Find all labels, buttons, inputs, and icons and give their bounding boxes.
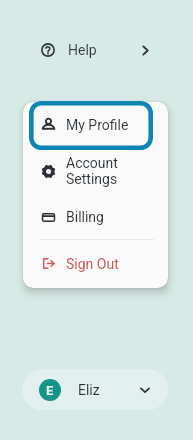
staticText: Sign Out [66, 256, 119, 272]
button[interactable]: Sign Out [23, 240, 168, 287]
button[interactable]: Billing [23, 195, 168, 239]
staticText: My Profile [66, 117, 129, 133]
staticText: Settings [66, 171, 118, 187]
button[interactable]: Account [23, 147, 168, 195]
staticText: Account [66, 155, 118, 171]
button[interactable]: E [22, 369, 168, 410]
button[interactable]: My Profile [23, 102, 168, 147]
button[interactable] [29, 101, 153, 150]
staticText: E [46, 383, 54, 398]
staticText: Billing [66, 209, 104, 225]
staticText: Eliz [78, 382, 100, 398]
staticText: Help [68, 42, 97, 58]
button[interactable]: Help [34, 37, 158, 63]
